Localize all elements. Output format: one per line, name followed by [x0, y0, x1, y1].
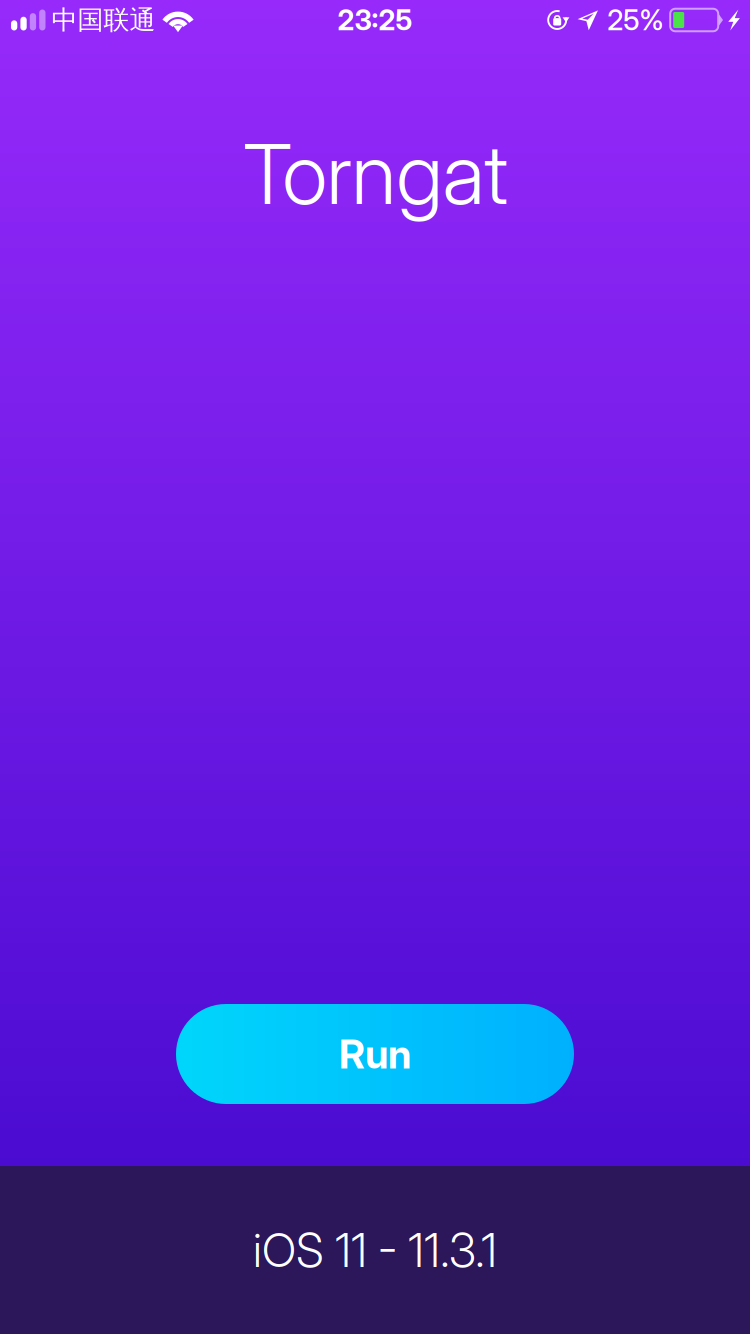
staticText: iOS 11 - 11.3.1	[253, 1222, 497, 1278]
staticText: 25%	[607, 3, 664, 37]
staticText: 中国联通	[51, 4, 155, 36]
staticText: Run	[339, 1030, 411, 1078]
button[interactable]: Run	[176, 1004, 574, 1104]
staticText: 23:25	[337, 3, 412, 37]
staticText: Torngat	[242, 124, 507, 224]
